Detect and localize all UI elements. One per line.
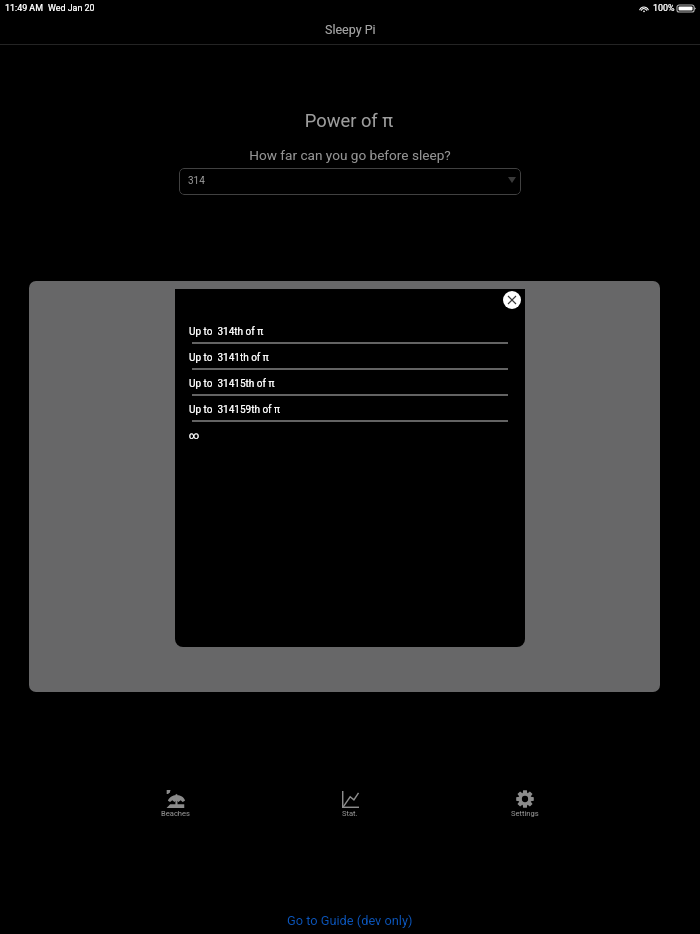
staticText: Sleepy Pi [325, 22, 376, 37]
staticText: Wed Jan 20 [48, 3, 95, 13]
button[interactable]: Up to 3141th of π [175, 352, 525, 378]
button[interactable]: Up to 314th of π [175, 326, 525, 352]
button[interactable]: 314 [179, 168, 521, 195]
button[interactable]: Stat. [320, 785, 380, 818]
button[interactable]: Settings [495, 785, 555, 818]
staticText: ∞ [189, 430, 200, 441]
staticText: Beaches [161, 809, 190, 818]
staticText: 11:49 AM [5, 3, 43, 13]
staticText: Up to 314th of π [189, 326, 264, 338]
staticText: Power of π [0, 110, 699, 131]
staticText: 100% [653, 3, 675, 13]
button[interactable]: Up to 31415th of π [175, 378, 525, 404]
staticText: Settings [511, 809, 539, 818]
button[interactable]: Up to 314159th of π [175, 404, 525, 430]
staticText: 314 [188, 175, 205, 187]
staticText: Up to 31415th of π [189, 378, 275, 390]
staticText: Up to 314159th of π [189, 404, 281, 416]
button[interactable]: Beaches [145, 785, 205, 818]
staticText: Stat. [342, 809, 358, 818]
button[interactable]: Go to Guide (dev only) [287, 913, 413, 928]
button[interactable]: Close [503, 291, 521, 309]
staticText: Up to 3141th of π [189, 352, 269, 364]
staticText: How far can you go before sleep? [0, 147, 700, 163]
